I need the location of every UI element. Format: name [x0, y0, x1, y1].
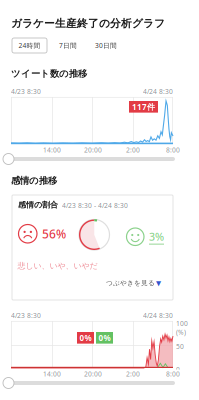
staticText: ▼: [156, 279, 161, 287]
staticText: 4/23 8:30: [11, 311, 41, 320]
staticText: 0: [176, 365, 180, 374]
staticText: ガラケー生産終了の分析グラフ: [11, 17, 165, 30]
staticText: 感情の割合: [18, 200, 58, 210]
staticText: 24時間: [18, 41, 40, 50]
staticText: 8:00: [166, 146, 180, 154]
staticText: 50: [176, 342, 184, 351]
staticText: 7日間: [59, 41, 77, 50]
staticText: 4/24 8:30: [143, 87, 173, 96]
staticText: 30日間: [95, 41, 117, 50]
staticText: 100: [176, 319, 188, 328]
staticText: (%): [176, 328, 186, 337]
button[interactable]: 30日間: [89, 38, 123, 53]
staticText: 2:00: [126, 370, 140, 378]
staticText: 20:00: [84, 146, 102, 154]
staticText: 3%: [149, 229, 164, 244]
staticText: 8:00: [166, 370, 180, 378]
staticText: 20:00: [84, 370, 102, 378]
button[interactable]: Time range slider: [3, 153, 180, 165]
button[interactable]: 7日間: [53, 38, 83, 53]
staticText: 14:00: [43, 146, 61, 154]
staticText: 4/23 8:30: [11, 87, 41, 96]
staticText: 悲しい、いや、いやだ: [17, 261, 97, 271]
button[interactable]: つぶやきを見る: [106, 279, 161, 287]
staticText: 感情の推移: [11, 175, 57, 186]
staticText: 4/24 8:30: [143, 311, 173, 320]
staticText: つぶやきを見る: [106, 279, 155, 287]
staticText: 2:00: [126, 146, 140, 154]
button[interactable]: 24時間: [12, 38, 47, 53]
staticText: 14:00: [43, 370, 61, 378]
staticText: 0%: [98, 332, 110, 343]
staticText: 56%: [42, 226, 66, 242]
staticText: 117件: [132, 101, 155, 112]
staticText: 0%: [79, 332, 91, 343]
button[interactable]: Time range slider: [3, 377, 180, 389]
staticText: ツイート数の推移: [11, 68, 87, 79]
staticText: 4/23 8:30 - 4/24 8:30: [62, 201, 128, 210]
